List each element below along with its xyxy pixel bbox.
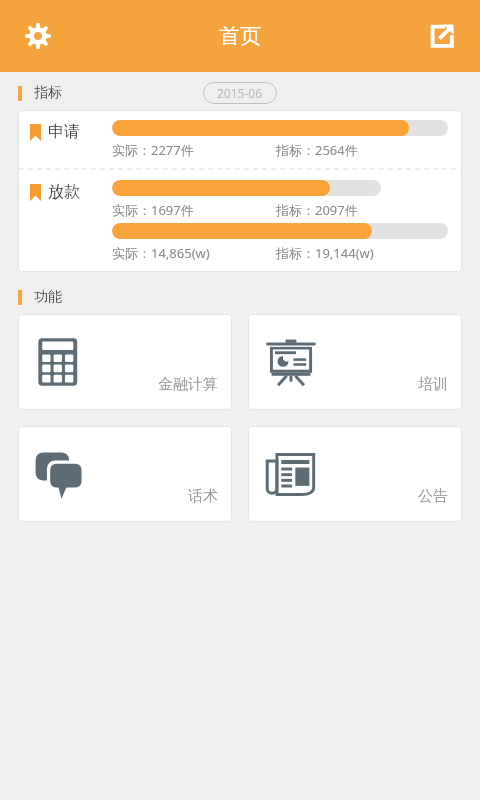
button[interactable]: 金融计算 [18, 314, 232, 410]
button[interactable]: 放款 [18, 170, 462, 272]
button[interactable]: Share [418, 12, 466, 60]
staticText: 申请 [48, 122, 80, 142]
staticText: 指标：2564件 [276, 141, 358, 159]
button[interactable]: 公告 [248, 426, 462, 522]
button[interactable]: Settings [14, 12, 62, 60]
staticText: 实际：2277件 [112, 141, 276, 159]
button[interactable]: 培训 [248, 314, 462, 410]
staticText: 培训 [418, 375, 448, 394]
button[interactable]: 2015-06 [203, 82, 277, 104]
staticText: 实际：14,865(w) [112, 244, 276, 262]
staticText: 金融计算 [158, 375, 218, 394]
staticText: 话术 [188, 487, 218, 506]
staticText: 功能 [34, 288, 62, 306]
staticText: 公告 [418, 487, 448, 506]
staticText: 指标 [34, 84, 62, 102]
button[interactable]: 申请 [18, 110, 462, 169]
staticText: 2015-06 [217, 85, 263, 101]
staticText: 实际：1697件 [112, 201, 276, 219]
staticText: 放款 [48, 182, 80, 202]
staticText: 指标：19,144(w) [276, 244, 374, 262]
button[interactable]: 话术 [18, 426, 232, 522]
staticText: 指标：2097件 [276, 201, 358, 219]
staticText: 首页 [219, 23, 261, 49]
